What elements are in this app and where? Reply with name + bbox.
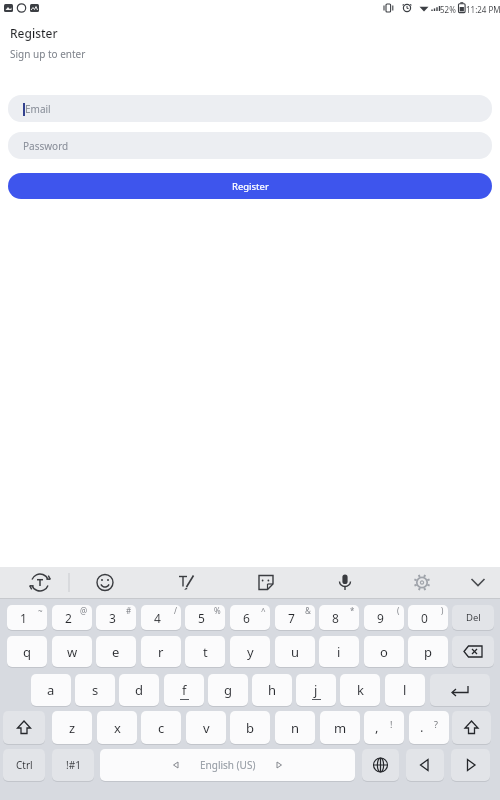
staticText: j [314, 681, 318, 699]
button[interactable]: Password [8, 132, 492, 159]
staticText: z [69, 719, 76, 737]
staticText: % [214, 605, 221, 616]
staticText: @ [80, 605, 88, 616]
staticText: English (US) [200, 758, 256, 772]
button[interactable] [430, 674, 490, 706]
button[interactable]: 6 [230, 605, 270, 630]
button[interactable]: p [408, 636, 448, 667]
button[interactable] [0, 567, 71, 598]
button[interactable]: a [31, 674, 71, 706]
button[interactable]: 8 [319, 605, 359, 630]
button[interactable]: y [230, 636, 270, 667]
button[interactable] [451, 749, 490, 781]
staticText: # [126, 605, 132, 616]
staticText: 11:24 PM [466, 4, 500, 15]
staticText: f [182, 681, 187, 699]
staticText: . [420, 718, 424, 736]
button[interactable]: t [185, 636, 225, 667]
button[interactable]: Register [8, 173, 492, 199]
button[interactable]: i [319, 636, 359, 667]
staticText: !#1 [66, 758, 81, 772]
staticText: Sign up to enter [10, 47, 86, 61]
button[interactable]: Del [452, 605, 494, 630]
button[interactable]: s [75, 674, 115, 706]
button[interactable]: 4 [141, 605, 181, 630]
staticText: Register [232, 180, 269, 193]
button[interactable] [452, 636, 494, 667]
button[interactable]: j [296, 674, 336, 706]
button[interactable]: x [97, 711, 137, 744]
staticText: 4 [154, 610, 161, 626]
button[interactable]: n [275, 711, 315, 744]
button[interactable] [306, 567, 382, 598]
button[interactable]: e [96, 636, 136, 667]
staticText: c [158, 719, 165, 737]
button[interactable]: w [52, 636, 92, 667]
staticText: 7 [288, 610, 295, 626]
staticText: a [47, 681, 55, 699]
button[interactable]: u [275, 636, 315, 667]
staticText: Email [25, 102, 51, 116]
button[interactable]: 2 [52, 605, 92, 630]
staticText: x [114, 719, 121, 737]
staticText: * [350, 605, 355, 616]
button[interactable]: g [208, 674, 248, 706]
staticText: s [92, 681, 99, 699]
staticText: 9 [377, 610, 384, 626]
button[interactable]: 7 [275, 605, 315, 630]
staticText: o [380, 643, 388, 661]
button[interactable]: Email [8, 95, 492, 122]
button[interactable] [228, 567, 304, 598]
button[interactable] [460, 567, 500, 598]
button[interactable]: d [119, 674, 159, 706]
staticText: Ctrl [16, 758, 33, 772]
button[interactable] [362, 749, 399, 781]
staticText: u [291, 643, 300, 661]
button[interactable]: 9 [364, 605, 404, 630]
button[interactable] [3, 711, 45, 744]
button[interactable] [150, 567, 226, 598]
button[interactable]: h [252, 674, 292, 706]
button[interactable]: , [364, 711, 404, 744]
button[interactable]: r [141, 636, 181, 667]
button[interactable]: b [230, 711, 270, 744]
staticText: t [203, 643, 208, 661]
button[interactable]: m [320, 711, 360, 744]
button[interactable]: . [409, 711, 449, 744]
button[interactable]: 1 [7, 605, 47, 630]
staticText: ! [390, 718, 393, 730]
staticText: d [135, 681, 143, 699]
staticText: Del [466, 611, 481, 624]
button[interactable]: v [186, 711, 226, 744]
button[interactable]: 0 [408, 605, 448, 630]
staticText: v [203, 719, 210, 737]
button[interactable]: c [141, 711, 181, 744]
button[interactable]: o [364, 636, 404, 667]
staticText: l [403, 681, 407, 699]
button[interactable] [384, 567, 460, 598]
staticText: m [334, 719, 347, 737]
staticText: 52% [440, 4, 456, 15]
staticText: , [375, 718, 379, 736]
staticText: Register [10, 25, 58, 41]
button[interactable] [71, 567, 141, 598]
button[interactable]: Ctrl [3, 749, 45, 781]
button[interactable]: l [385, 674, 425, 706]
staticText: 1 [20, 610, 27, 626]
staticText: / [174, 605, 177, 616]
button[interactable]: f [164, 674, 204, 706]
button[interactable] [452, 711, 491, 744]
staticText: y [247, 643, 254, 661]
button[interactable]: z [52, 711, 92, 744]
staticText: ? [434, 718, 438, 730]
button[interactable]: !#1 [52, 749, 94, 781]
button[interactable]: 3 [96, 605, 136, 630]
button[interactable]: English (US) [100, 749, 355, 781]
button[interactable]: 5 [185, 605, 225, 630]
staticText: 8 [332, 610, 339, 626]
staticText: n [291, 719, 300, 737]
button[interactable] [406, 749, 444, 781]
staticText: 0 [421, 610, 428, 626]
button[interactable]: q [7, 636, 47, 667]
button[interactable]: k [340, 674, 380, 706]
